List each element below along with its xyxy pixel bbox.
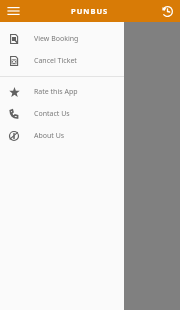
button[interactable]: Cancel Ticket [0, 50, 124, 72]
staticText: Contact Us [34, 109, 70, 119]
button[interactable]: Contact Us [0, 103, 124, 125]
staticText: About Us [34, 131, 65, 141]
button[interactable]: Booking history [159, 3, 175, 19]
staticText: Rate this App [34, 87, 78, 97]
staticText: PUNBUS [71, 6, 109, 16]
button[interactable]: Rate this App [0, 81, 124, 103]
button[interactable]: About Us [0, 125, 124, 147]
button[interactable]: SEARCH BUSES [14, 169, 166, 189]
button[interactable]: View Booking [0, 28, 124, 50]
staticText: View Booking [34, 34, 79, 44]
staticText: Cancel Ticket [34, 56, 77, 66]
button[interactable]: Open navigation drawer [4, 2, 22, 20]
